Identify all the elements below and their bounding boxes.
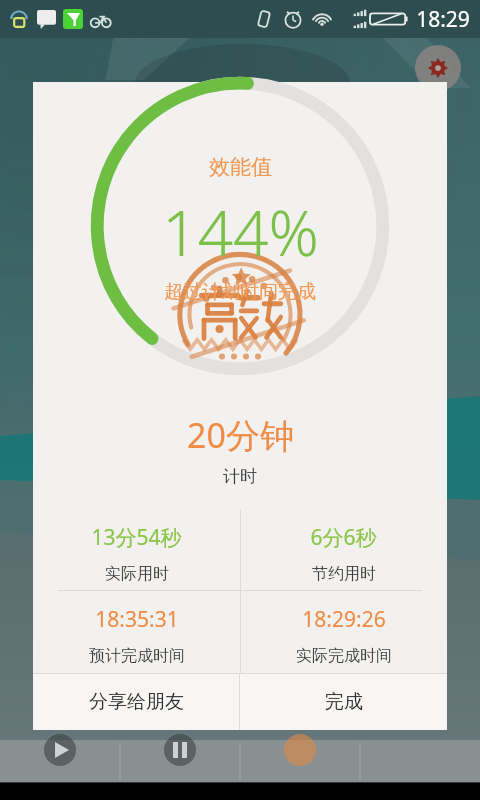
staticText: 18:35:31	[95, 605, 179, 634]
staticText: 144%	[162, 190, 319, 274]
button[interactable]: 13分54秒	[33, 509, 240, 590]
staticText: 超过计划时间完成	[164, 280, 316, 304]
button[interactable]: 18:29:26	[240, 591, 447, 672]
staticText: 分享给朋友	[89, 690, 184, 714]
staticText: 20分钟	[187, 412, 294, 458]
button[interactable]: 18:35:31	[33, 591, 240, 672]
staticText: 6分6秒	[310, 523, 377, 552]
staticText: 18:29	[416, 5, 470, 34]
staticText: 效能值	[209, 154, 272, 180]
staticText: 节约用时	[312, 564, 376, 584]
button[interactable]: 分享给朋友	[33, 674, 239, 730]
staticText: 18:29:26	[302, 605, 386, 634]
button[interactable]: 6分6秒	[240, 509, 447, 590]
staticText: 完成	[325, 690, 363, 714]
staticText: 13分54秒	[91, 523, 182, 552]
staticText: 预计完成时间	[89, 646, 185, 666]
staticText: 计时	[223, 466, 257, 487]
button[interactable]: Settings	[415, 45, 461, 91]
staticText: 实际完成时间	[296, 646, 392, 666]
button[interactable]: 完成	[240, 674, 447, 730]
staticText: 实际用时	[105, 564, 169, 584]
